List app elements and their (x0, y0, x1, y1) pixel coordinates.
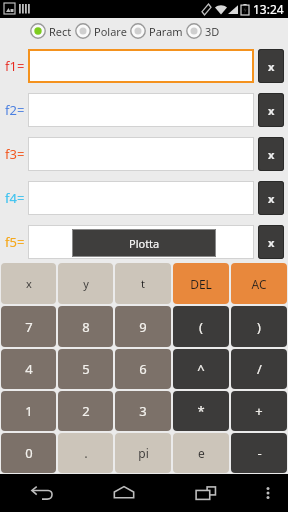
button[interactable]: Recent apps (165, 474, 247, 512)
button[interactable]: DEL (173, 263, 229, 304)
staticText: Plotta (129, 236, 160, 251)
staticText: - (257, 444, 262, 462)
button[interactable]: 2 (58, 391, 113, 431)
staticText: f1= (5, 57, 25, 75)
staticText: 0 (25, 444, 33, 462)
staticText: ) (257, 318, 261, 336)
staticText: f2= (5, 101, 25, 119)
button[interactable]: Clear f4= (258, 181, 284, 215)
staticText: Rect (49, 24, 72, 39)
button[interactable]: * (173, 391, 229, 431)
staticText: x (26, 276, 32, 291)
staticText: * (197, 402, 205, 420)
button[interactable]: 1 (1, 391, 56, 431)
button[interactable] (28, 181, 254, 215)
button[interactable]: Polare (75, 23, 130, 39)
staticText: 2 (82, 402, 90, 420)
staticText: x (268, 59, 275, 74)
button[interactable]: - (231, 433, 287, 473)
button[interactable]: Plotta (72, 229, 216, 257)
button[interactable]: AC (231, 263, 287, 304)
staticText: 7 (25, 318, 33, 336)
button[interactable]: More options (247, 474, 288, 512)
button[interactable]: 8 (58, 306, 113, 347)
button[interactable]: Home (83, 474, 165, 512)
button[interactable]: 3 (115, 391, 171, 431)
staticText: 1 (25, 402, 33, 420)
staticText: x (268, 147, 275, 162)
staticText: 5 (82, 360, 90, 378)
button[interactable]: 5 (58, 349, 113, 389)
button[interactable]: x (1, 263, 56, 304)
staticText: 8 (82, 318, 90, 336)
button[interactable]: y (58, 263, 113, 304)
button[interactable]: ) (231, 306, 287, 347)
button[interactable]: ( (173, 306, 229, 347)
button[interactable]: 7 (1, 306, 56, 347)
staticText: f3= (5, 145, 25, 163)
staticText: ( (199, 318, 203, 336)
button[interactable] (28, 49, 254, 83)
staticText: 3D (205, 24, 220, 39)
staticText: . (84, 444, 88, 462)
staticText: 3 (139, 402, 147, 420)
button[interactable]: 0 (1, 433, 56, 473)
staticText: ^ (197, 360, 205, 378)
button[interactable]: 3D (186, 23, 223, 39)
staticText: AC (251, 276, 267, 292)
staticText: 6 (139, 360, 147, 378)
button[interactable]: 4 (1, 349, 56, 389)
button[interactable]: Clear f5= (258, 225, 284, 259)
button[interactable]: e (173, 433, 229, 473)
button[interactable]: + (231, 391, 287, 431)
button[interactable]: . (58, 433, 113, 473)
button[interactable]: pi (115, 433, 171, 473)
staticText: Param (149, 24, 183, 39)
staticText: f4= (5, 189, 25, 207)
button[interactable]: 6 (115, 349, 171, 389)
staticText: t (141, 276, 145, 291)
staticText: Polare (94, 24, 127, 39)
staticText: DEL (190, 276, 212, 292)
staticText: f5= (5, 233, 25, 251)
staticText: e (198, 445, 205, 461)
staticText: x (268, 103, 275, 118)
button[interactable]: Param (130, 23, 186, 39)
button[interactable] (28, 225, 254, 259)
button[interactable]: Clear f1= (258, 49, 284, 83)
staticText: 4 (25, 360, 33, 378)
button[interactable]: Rect (30, 23, 75, 39)
staticText: + (255, 402, 263, 420)
button[interactable] (28, 93, 254, 127)
staticText: 9 (139, 318, 147, 336)
staticText: y (83, 276, 89, 291)
button[interactable]: / (231, 349, 287, 389)
button[interactable]: ^ (173, 349, 229, 389)
staticText: pi (138, 445, 149, 461)
button[interactable]: Clear f2= (258, 93, 284, 127)
staticText: / (257, 360, 262, 378)
button[interactable]: t (115, 263, 171, 304)
button[interactable]: Clear f3= (258, 137, 284, 171)
staticText: 13:24 (253, 1, 284, 17)
button[interactable]: Back (0, 474, 83, 512)
button[interactable]: 9 (115, 306, 171, 347)
button[interactable] (28, 137, 254, 171)
staticText: x (268, 235, 275, 250)
staticText: x (268, 191, 275, 206)
